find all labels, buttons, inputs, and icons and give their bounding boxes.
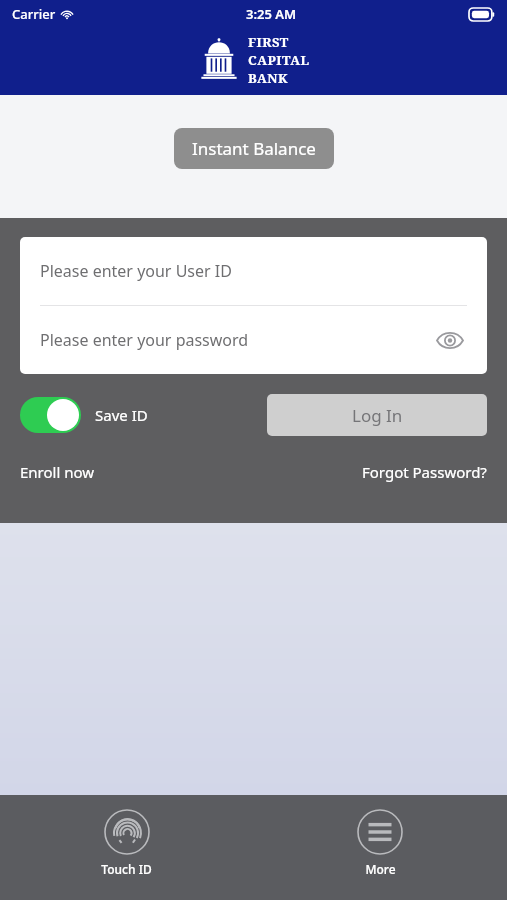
staticText: Enroll now <box>20 462 95 482</box>
staticText: BANK <box>248 69 289 87</box>
staticText: More <box>365 861 396 877</box>
staticText: FIRST <box>248 33 289 51</box>
staticText: Touch ID <box>101 861 152 877</box>
staticText: Save ID <box>95 405 148 425</box>
button[interactable]: Save ID <box>20 397 148 433</box>
staticText: 3:25 AM <box>246 5 297 23</box>
staticText: Instant Balance <box>192 137 316 160</box>
button[interactable]: Log In <box>267 394 487 436</box>
button[interactable]: More <box>357 795 403 877</box>
button[interactable]: Enroll now <box>20 462 95 482</box>
button[interactable]: Forgot Password? <box>362 462 487 482</box>
staticText: Please enter your password <box>40 329 249 351</box>
staticText: CAPITAL <box>248 51 310 69</box>
staticText: Please enter your User ID <box>40 260 232 282</box>
button[interactable]: Please enter your User ID <box>20 237 487 305</box>
staticText: Forgot Password? <box>362 462 487 482</box>
button[interactable]: Show password <box>433 323 467 357</box>
staticText: Log In <box>352 404 403 427</box>
button[interactable]: Please enter your password <box>20 306 487 374</box>
button[interactable]: Touch ID <box>101 795 152 877</box>
staticText: Carrier <box>12 5 56 23</box>
button[interactable]: Instant Balance <box>174 128 334 169</box>
